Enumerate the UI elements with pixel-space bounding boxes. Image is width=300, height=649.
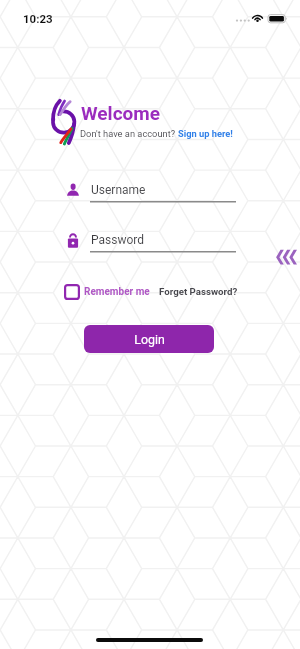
staticText: 10:23 — [23, 12, 53, 25]
staticText: Password — [91, 233, 145, 247]
staticText: Remember me — [84, 286, 150, 298]
button[interactable]: Login — [84, 325, 214, 353]
button[interactable]: Password — [64, 233, 236, 255]
staticText: Login — [134, 332, 165, 347]
button[interactable]: Forget Password? — [159, 286, 238, 297]
staticText: Forget Password? — [159, 286, 238, 297]
button[interactable]: Back — [275, 249, 298, 266]
button[interactable]: Remember me — [64, 284, 150, 300]
staticText: Don't have an account? — [80, 128, 178, 139]
staticText: Sign up here! — [178, 128, 233, 139]
button[interactable]: Username — [64, 183, 236, 205]
staticText: Username — [91, 183, 146, 197]
button[interactable]: Sign up here! — [178, 128, 233, 139]
staticText: Welcome — [81, 102, 161, 124]
